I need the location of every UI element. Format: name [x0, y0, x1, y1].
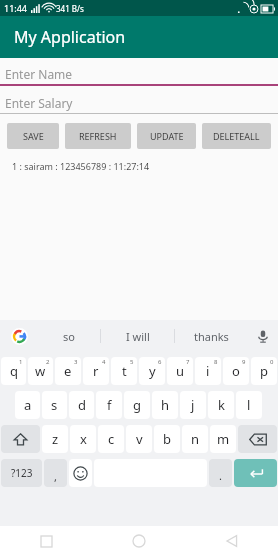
button[interactable]: b [154, 425, 180, 453]
staticText: 9 [242, 358, 246, 366]
button[interactable]: UPDATE [137, 123, 196, 149]
button[interactable]: I will [101, 320, 174, 352]
button[interactable]: ?123 [1, 459, 42, 487]
button[interactable]: o [223, 357, 249, 385]
staticText: UPDATE [150, 130, 184, 142]
button[interactable]: Home [92, 526, 185, 556]
button[interactable]: Recents [0, 526, 92, 556]
staticText: m [217, 430, 230, 448]
button[interactable]: g [124, 391, 150, 419]
button[interactable]: h [152, 391, 178, 419]
button[interactable]: so [38, 320, 100, 352]
button[interactable]: Enter Name [0, 64, 278, 86]
staticText: REFRESH [79, 130, 117, 142]
button[interactable]: u [167, 357, 193, 385]
staticText: s [51, 396, 58, 414]
staticText: a [24, 396, 32, 414]
staticText: o [232, 362, 240, 380]
button[interactable]: Shift [1, 425, 40, 453]
button[interactable]: s [42, 391, 67, 419]
staticText: p [260, 362, 268, 380]
staticText: SAVE [23, 130, 44, 142]
button[interactable]: x [70, 425, 96, 453]
button[interactable]: k [208, 391, 234, 419]
button[interactable]: j [180, 391, 206, 419]
button[interactable]: m [210, 425, 236, 453]
staticText: w [35, 362, 46, 380]
staticText: n [191, 430, 200, 448]
button[interactable]: e [55, 357, 81, 385]
staticText: q [10, 362, 18, 380]
staticText: 8 [214, 358, 218, 366]
button[interactable]: a [15, 391, 40, 419]
staticText: v [136, 430, 143, 448]
staticText: 1 : sairam : 123456789 : 11:27:14 [12, 160, 150, 172]
staticText: f [107, 396, 112, 414]
button[interactable]: Backspace [238, 425, 277, 453]
button[interactable]: r [83, 357, 109, 385]
staticText: thanks [194, 329, 229, 344]
staticText: My Application [14, 26, 126, 48]
button[interactable]: , [44, 459, 67, 487]
staticText: u [176, 362, 185, 380]
staticText: j [191, 396, 195, 414]
staticText: DELETEALL [213, 130, 260, 142]
button[interactable]: . [209, 459, 232, 487]
staticText: 341 B/s [56, 3, 84, 14]
staticText: , [54, 469, 57, 484]
staticText: 6 [158, 358, 162, 366]
button[interactable]: f [96, 391, 122, 419]
staticText: z [52, 430, 59, 448]
staticText: Enter Salary [5, 95, 73, 111]
button[interactable]: Enter [234, 459, 277, 487]
button[interactable]: w [28, 357, 53, 385]
button[interactable]: Enter Salary [0, 93, 278, 114]
staticText: 4 [102, 358, 106, 366]
button[interactable]: q [1, 357, 26, 385]
staticText: 5 [130, 358, 134, 366]
staticText: g [133, 396, 141, 414]
staticText: l [247, 396, 251, 414]
staticText: Enter Name [5, 66, 73, 82]
staticText: so [63, 329, 75, 344]
staticText: 3 [74, 358, 78, 366]
button[interactable]: DELETEALL [202, 123, 271, 149]
staticText: 11:44 [4, 2, 28, 14]
button[interactable]: SAVE [7, 123, 59, 149]
button[interactable]: Google [0, 320, 38, 352]
staticText: y [149, 362, 156, 380]
staticText: h [161, 396, 170, 414]
staticText: x [80, 430, 87, 448]
button[interactable]: y [139, 357, 165, 385]
button[interactable]: thanks [175, 320, 248, 352]
button[interactable]: z [42, 425, 68, 453]
staticText: k [218, 396, 225, 414]
button[interactable]: Voice input [248, 320, 278, 352]
staticText: 1 [19, 358, 23, 366]
staticText: 2 [46, 358, 50, 366]
staticText: i [206, 362, 210, 380]
button[interactable]: Emoji [69, 459, 92, 487]
staticText: r [93, 362, 99, 380]
button[interactable]: REFRESH [65, 123, 131, 149]
button[interactable]: l [236, 391, 262, 419]
button[interactable]: t [111, 357, 137, 385]
button[interactable]: i [195, 357, 221, 385]
staticText: b [163, 430, 171, 448]
staticText: 0 [270, 358, 274, 366]
button[interactable]: p [251, 357, 277, 385]
button[interactable]: n [182, 425, 208, 453]
staticText: ?123 [11, 466, 33, 480]
staticText: c [108, 430, 115, 448]
staticText: t [122, 362, 127, 380]
staticText: . [219, 468, 222, 483]
staticText: I will [126, 329, 150, 344]
staticText: d [78, 396, 86, 414]
button[interactable]: Back [185, 526, 278, 556]
staticText: 7 [186, 358, 190, 366]
button[interactable]: v [126, 425, 152, 453]
button[interactable]: c [98, 425, 124, 453]
staticText: e [64, 362, 72, 380]
button[interactable]: d [69, 391, 94, 419]
